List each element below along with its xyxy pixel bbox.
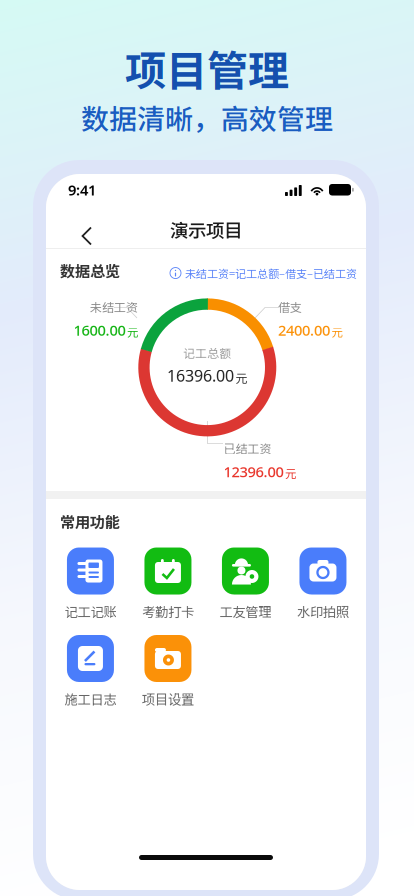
- staticText: 演示项目: [170, 216, 242, 243]
- button[interactable]: 工友管理: [207, 547, 284, 621]
- staticText: 数据清晰，高效管理: [81, 97, 333, 137]
- staticText: 未结工资: [90, 298, 138, 315]
- button[interactable]: 记工记账: [52, 547, 129, 621]
- staticText: 元: [236, 369, 248, 386]
- staticText: 考勤打卡: [142, 601, 194, 621]
- staticText: 记工总额: [183, 344, 231, 361]
- staticText: 12396.00: [224, 462, 284, 481]
- staticText: 施工日志: [64, 689, 116, 708]
- button[interactable]: 项目设置: [129, 635, 207, 708]
- staticText: 1600.00: [73, 320, 125, 340]
- staticText: 项目管理: [125, 38, 289, 97]
- staticText: 工友管理: [219, 601, 271, 621]
- staticText: 16396.00: [167, 365, 234, 386]
- staticText: 2400.00: [278, 320, 330, 340]
- staticText: 数据总览: [60, 259, 120, 281]
- staticText: 元: [127, 323, 138, 340]
- staticText: 项目设置: [142, 689, 194, 708]
- button[interactable]: 施工日志: [52, 635, 129, 708]
- button[interactable]: Back: [56, 205, 96, 245]
- button[interactable]: 未结工资=记工总额–借支–已结工资: [170, 262, 357, 284]
- staticText: 9:41: [68, 180, 96, 199]
- staticText: 已结工资: [224, 439, 272, 457]
- staticText: 水印拍照: [297, 601, 349, 621]
- staticText: 借支: [278, 298, 302, 315]
- staticText: 常用功能: [60, 510, 120, 532]
- staticText: 未结工资=记工总额–借支–已结工资: [185, 265, 357, 281]
- staticText: 元: [285, 465, 296, 481]
- staticText: 元: [331, 323, 342, 340]
- button[interactable]: 水印拍照: [284, 547, 362, 621]
- button[interactable]: 考勤打卡: [129, 547, 207, 621]
- staticText: 记工记账: [64, 601, 116, 621]
